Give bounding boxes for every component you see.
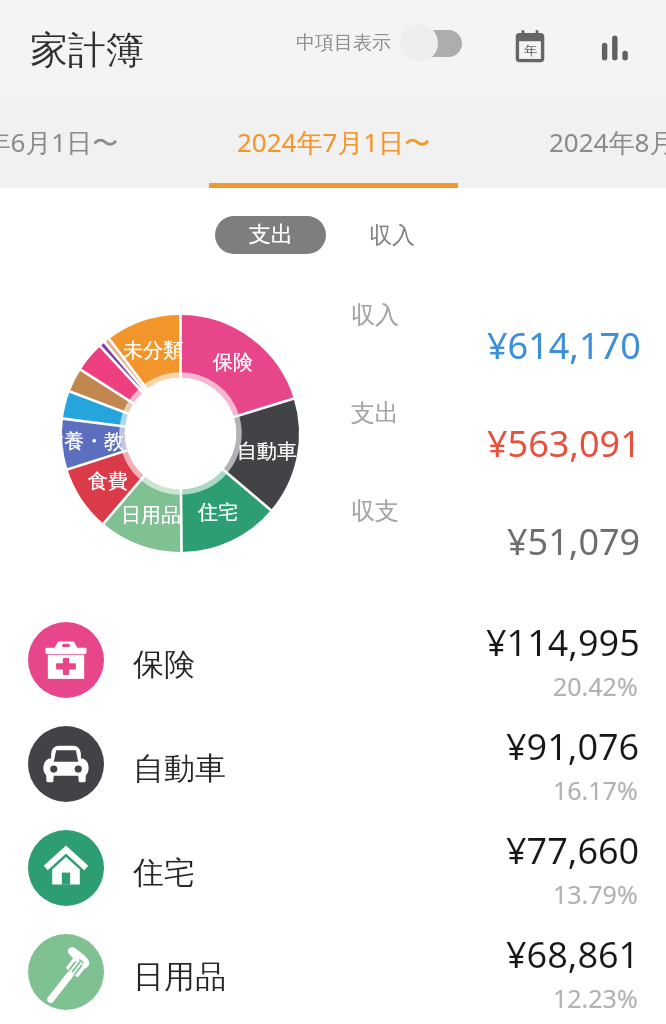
button[interactable]: 支出 (215, 216, 326, 254)
staticText: 住宅 (198, 500, 238, 525)
staticText: 家計簿 (30, 26, 144, 74)
staticText: 食費 (88, 469, 128, 494)
staticText: 未分類 (123, 338, 183, 363)
staticText: 16.17% (553, 773, 638, 807)
staticText: ¥91,076 (506, 722, 640, 771)
staticText: 支出 (351, 398, 399, 428)
button[interactable]: 保険 (0, 608, 666, 712)
button[interactable]: 住宅 (0, 816, 666, 920)
button[interactable]: 自動車 (0, 712, 666, 816)
button[interactable]: 収入 (358, 216, 426, 254)
button[interactable]: 2024年6月1日〜 (0, 96, 178, 188)
button[interactable]: 日用品 (0, 920, 666, 1024)
staticText: 2024年6月1日〜 (0, 124, 119, 160)
staticText: 保険 (133, 645, 195, 684)
button[interactable]: 2024年7月1日〜 (178, 96, 490, 188)
staticText: 2024年7月1日〜 (237, 124, 431, 160)
staticText: 日用品 (121, 503, 181, 528)
staticText: 中項目表示 (296, 31, 391, 55)
staticText: 20.42% (553, 669, 638, 703)
staticText: 日用品 (133, 957, 226, 996)
staticText: 収入 (369, 221, 415, 250)
staticText: 年 (524, 42, 537, 58)
staticText: 自動車 (237, 439, 297, 464)
staticText: 12.23% (553, 981, 638, 1015)
staticText: ¥77,660 (506, 826, 640, 875)
staticText: 収支 (351, 496, 399, 526)
staticText: 住宅 (133, 853, 195, 892)
button[interactable]: Chart view (590, 22, 640, 72)
button[interactable]: Yearly view (505, 22, 555, 72)
staticText: ¥614,170 (487, 321, 641, 370)
staticText: ¥114,995 (486, 618, 640, 667)
button[interactable]: 2024年8月1日〜 (490, 96, 666, 188)
staticText: 保険 (213, 350, 253, 375)
staticText: ¥563,091 (487, 419, 641, 468)
staticText: 自動車 (133, 749, 226, 788)
staticText: 教養・教育 (44, 429, 144, 454)
staticText: 支出 (249, 221, 293, 249)
staticText: ¥51,079 (507, 517, 641, 566)
staticText: 2024年8月1日〜 (549, 124, 666, 160)
staticText: ¥68,861 (506, 930, 640, 979)
staticText: 13.79% (553, 877, 638, 911)
staticText: 収入 (351, 300, 399, 330)
button[interactable]: 中項目表示 (296, 20, 462, 66)
